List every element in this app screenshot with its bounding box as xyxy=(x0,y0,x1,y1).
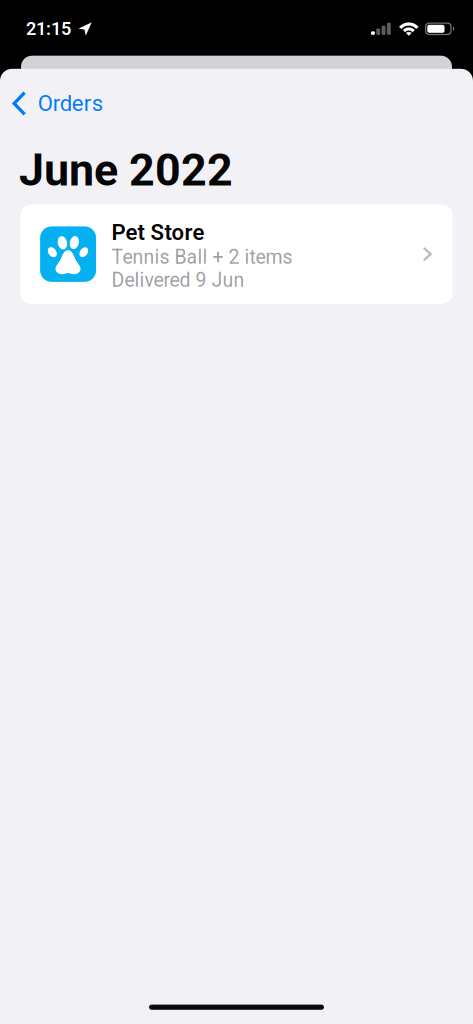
button[interactable]: Orders xyxy=(2,83,115,123)
staticText: Pet Store xyxy=(112,219,205,245)
staticText: Delivered 9 Jun xyxy=(112,269,245,291)
staticText: Tennis Ball + 2 items xyxy=(112,246,293,268)
staticText: June 2022 xyxy=(19,144,233,196)
button[interactable]: Pet Store xyxy=(20,204,453,304)
staticText: 21:15 xyxy=(26,18,71,39)
button[interactable]: Location in use xyxy=(26,18,92,39)
staticText: Orders xyxy=(38,90,103,116)
